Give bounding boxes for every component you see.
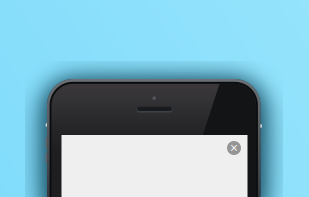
staticText: ✕ (229, 142, 238, 154)
button[interactable]: Close (222, 136, 246, 160)
